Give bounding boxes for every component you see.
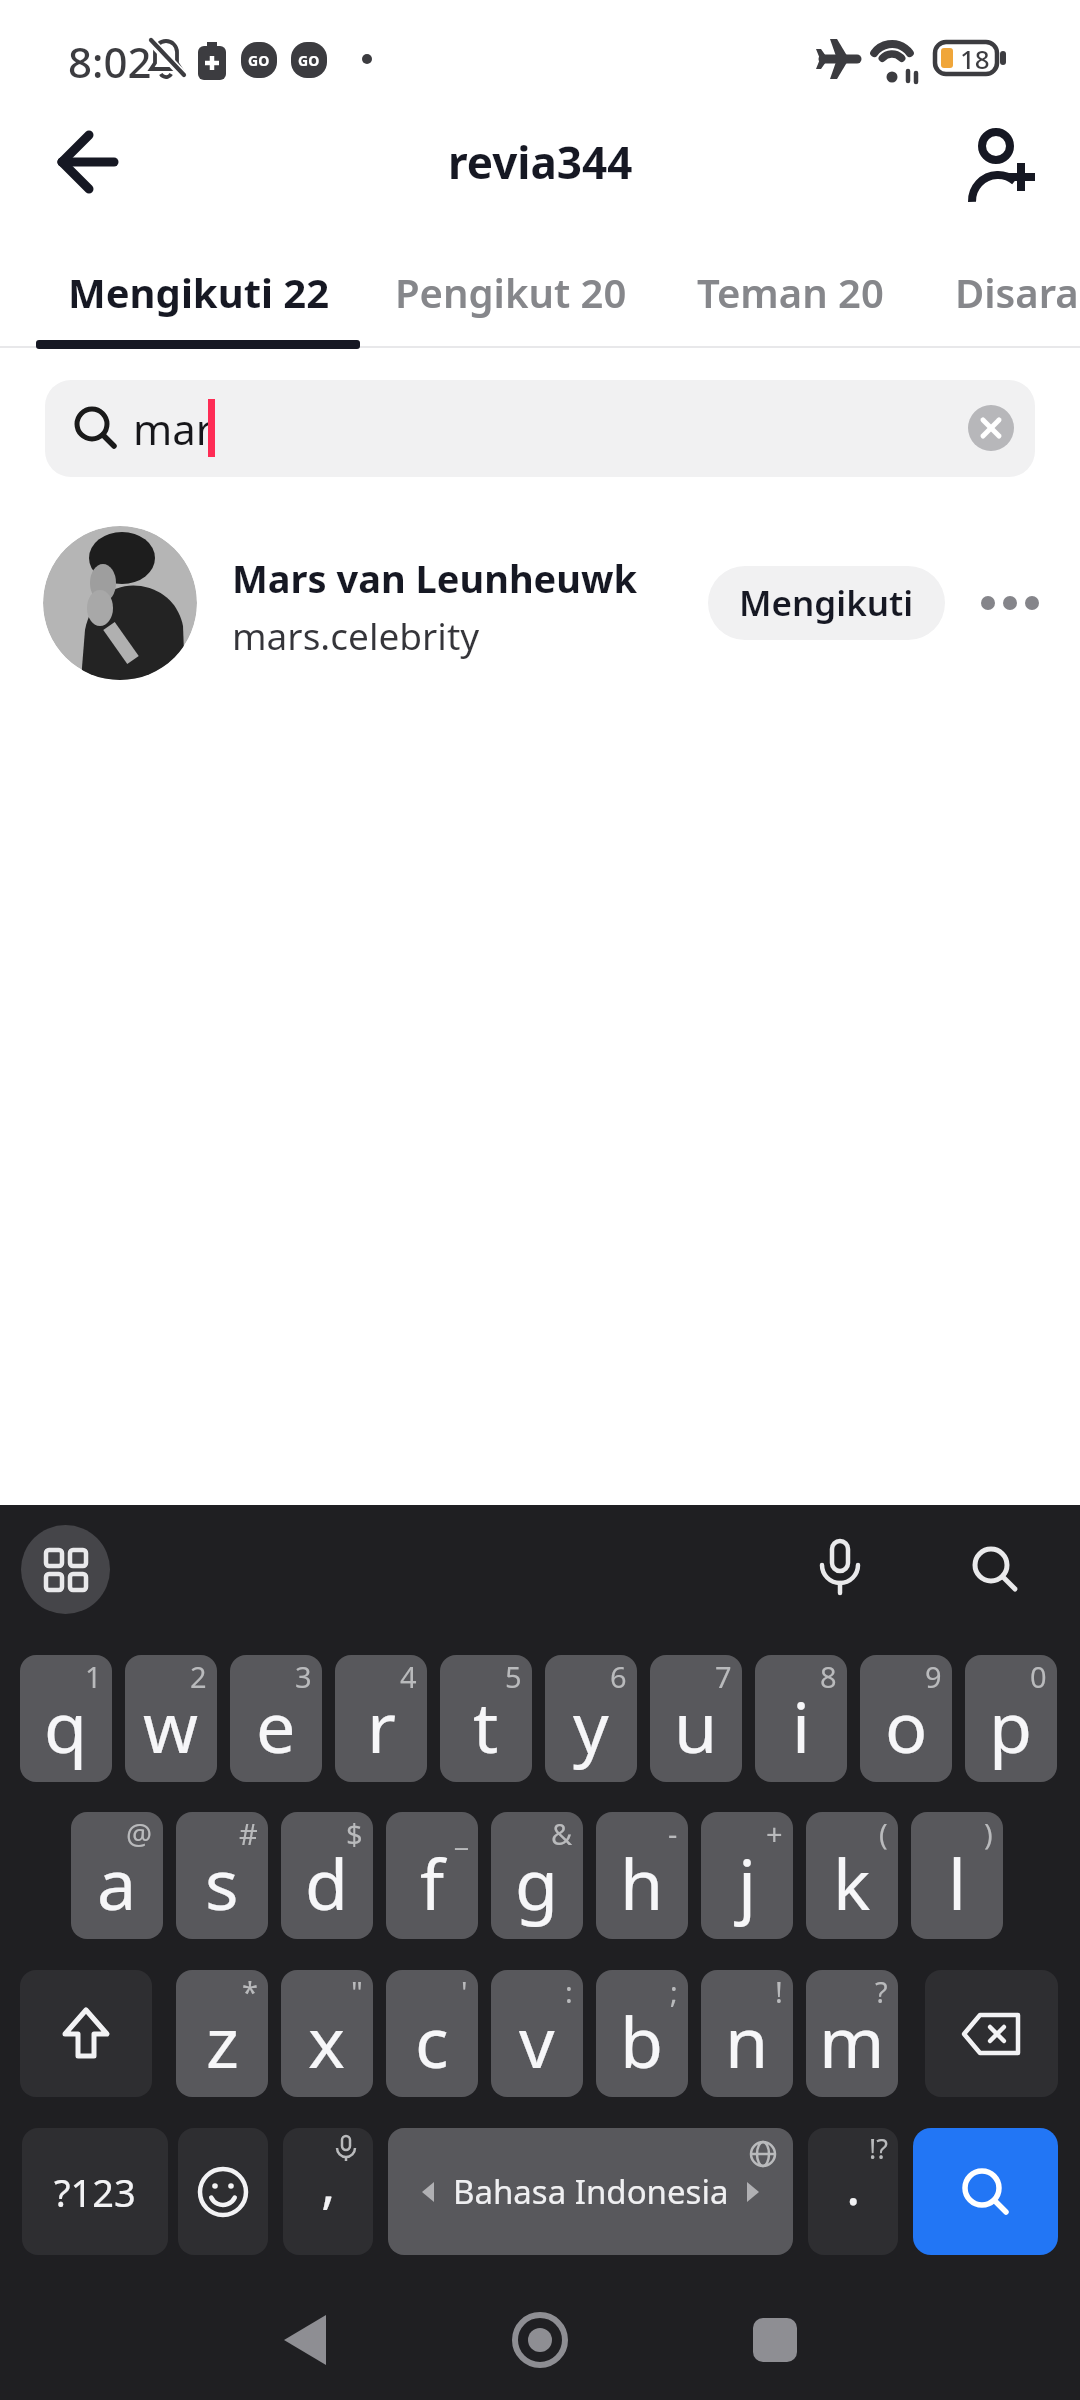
button[interactable]: v [491,1970,583,2097]
button[interactable] [800,1529,880,1609]
button[interactable]: Pengikut 20 [395,265,627,319]
staticText: ?123 [54,2166,136,2218]
button[interactable]: h [596,1812,688,1939]
staticText: - [668,1814,678,1853]
staticText: z [206,1993,239,2088]
button[interactable] [500,2305,580,2375]
button[interactable] [40,122,130,204]
button[interactable]: j [701,1812,793,1939]
button[interactable]: b [596,1970,688,2097]
button[interactable]: o [860,1655,952,1782]
button[interactable]: s [176,1812,268,1939]
button[interactable]: Teman 20 [697,265,884,319]
button[interactable] [955,115,1055,210]
staticText: u [674,1678,718,1773]
button[interactable]: f [386,1812,478,1939]
button[interactable] [735,2305,815,2375]
staticText: 4 [400,1657,417,1696]
staticText: b [620,1993,664,2088]
button[interactable] [913,2128,1058,2255]
staticText: q [44,1678,88,1773]
staticText: ) [984,1814,993,1853]
button[interactable]: Mars van Leunheuwk [0,515,1080,690]
staticText: ! [775,1972,783,2011]
button[interactable]: y [545,1655,637,1782]
staticText: x [308,1993,346,2088]
staticText: i [792,1678,811,1773]
staticText: t [473,1678,499,1773]
button[interactable]: i [755,1655,847,1782]
button[interactable]: ?123 [22,2128,168,2255]
button[interactable]: Mengikuti 22 [68,265,330,319]
staticText: mars.celebrity [232,610,480,660]
staticText: revia344 [448,132,633,192]
staticText: GO [298,51,320,70]
staticText: 9 [925,1657,942,1696]
staticText: a [97,1835,137,1930]
staticText: f [420,1835,445,1930]
button[interactable]: t [440,1655,532,1782]
button[interactable] [21,1525,110,1614]
staticText: g [515,1835,559,1930]
button[interactable]: Disarankan [955,265,1080,319]
button[interactable]: . [808,2128,898,2255]
button[interactable]: Bahasa Indonesia [388,2128,793,2255]
staticText: 6 [610,1657,627,1696]
button[interactable]: m [806,1970,898,2097]
staticText: s [205,1835,239,1930]
staticText: d [305,1835,349,1930]
button[interactable]: w [125,1655,217,1782]
button[interactable]: n [701,1970,793,2097]
staticText: Teman 20 [697,265,884,319]
button[interactable]: z [176,1970,268,2097]
button[interactable]: p [965,1655,1057,1782]
button[interactable]: x [281,1970,373,2097]
button[interactable]: c [386,1970,478,2097]
staticText: 3 [295,1657,312,1696]
button[interactable] [925,1970,1058,2097]
staticText: Bahasa Indonesia [453,2169,729,2214]
staticText: 8 [820,1657,837,1696]
button[interactable]: a [71,1812,163,1939]
staticText: 5 [505,1657,522,1696]
staticText: Mengikuti [739,579,914,627]
staticText: 8:02 [68,33,152,90]
button[interactable]: l [911,1812,1003,1939]
staticText: . [846,2147,861,2221]
button[interactable] [265,2305,345,2375]
button[interactable]: Mengikuti [708,566,945,640]
staticText: & [551,1814,573,1853]
staticText: c [415,1993,449,2088]
staticText: ' [461,1972,468,2011]
button[interactable]: mar [45,380,1035,477]
staticText: ; [670,1972,678,2011]
staticText: n [725,1993,769,2088]
button[interactable] [20,1970,152,2097]
button[interactable]: q [20,1655,112,1782]
staticText: ? [875,1972,888,2011]
staticText: o [885,1678,928,1773]
staticText: $ [346,1814,363,1853]
button[interactable] [968,405,1014,451]
button[interactable]: u [650,1655,742,1782]
staticText: y [573,1678,609,1773]
button[interactable]: , [283,2128,373,2255]
button[interactable]: r [335,1655,427,1782]
staticText: w [143,1678,199,1773]
button[interactable]: k [806,1812,898,1939]
staticText: 18 [960,41,990,76]
staticText: , [321,2145,336,2219]
button[interactable] [178,2128,268,2255]
staticText: k [833,1835,871,1930]
staticText: _ [455,1814,468,1853]
staticText: 2 [190,1657,207,1696]
staticText: + [766,1814,783,1853]
button[interactable]: g [491,1812,583,1939]
staticText: * [242,1972,258,2011]
button[interactable]: e [230,1655,322,1782]
staticText: 1 [85,1657,102,1696]
button[interactable]: d [281,1812,373,1939]
button[interactable] [955,1529,1035,1609]
staticText: Pengikut 20 [395,265,627,319]
button[interactable] [970,573,1050,633]
